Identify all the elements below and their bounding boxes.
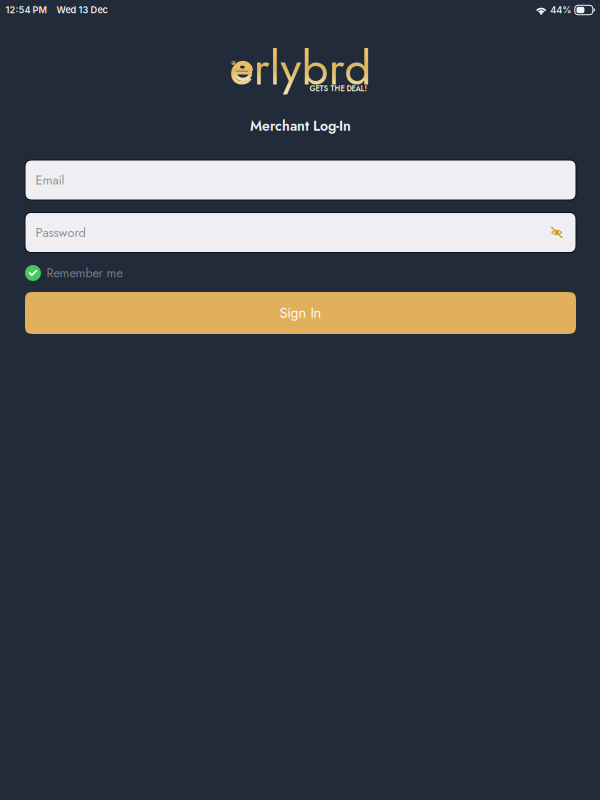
staticText: 44% [550, 4, 571, 15]
button[interactable]: Remember me [25, 265, 576, 281]
staticText: Wed 13 Dec [56, 4, 107, 15]
staticText: 12:54 PM [5, 4, 46, 15]
staticText: Merchant Log-In [250, 116, 351, 136]
button[interactable]: Password [25, 212, 576, 252]
staticText: GETS THE DEAL! [310, 83, 368, 94]
staticText: Password [35, 223, 85, 242]
button[interactable]: Email [25, 160, 576, 200]
staticText: Sign In [279, 305, 321, 321]
button[interactable]: Sign In [25, 292, 576, 334]
staticText: Email [35, 171, 64, 189]
staticText: Remember me [46, 264, 122, 282]
